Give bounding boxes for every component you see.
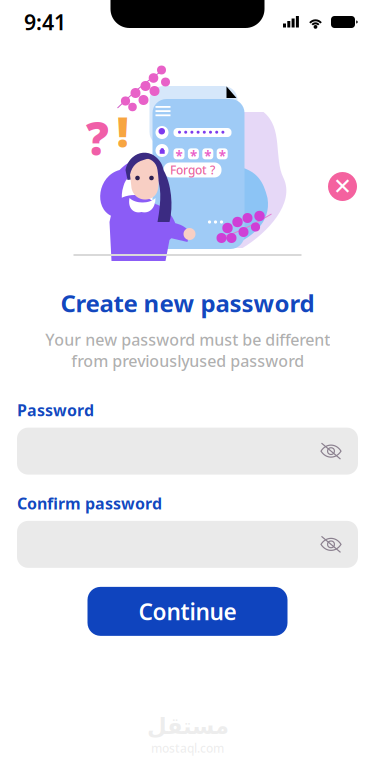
staticText: Your new password must be different from… [45,329,330,371]
button[interactable] [17,428,358,475]
staticText: Confirm password [17,493,162,514]
staticText: Create new password [60,287,314,319]
staticText: * [190,147,197,165]
staticText: * [204,147,211,165]
button[interactable]: Continue [87,587,287,636]
staticText: ! [116,103,128,159]
staticText: مستقل [146,713,228,739]
staticText: 9:41 [24,8,66,36]
staticText: ✕ [333,174,352,199]
staticText: * [175,147,182,165]
button[interactable] [17,521,358,568]
staticText: ? [86,108,109,168]
staticText: Continue [138,596,236,626]
staticText: * [219,147,226,165]
staticText: Password [17,399,94,421]
staticText: mostaql.com [151,740,224,756]
staticText: Forgot ? [170,162,215,178]
